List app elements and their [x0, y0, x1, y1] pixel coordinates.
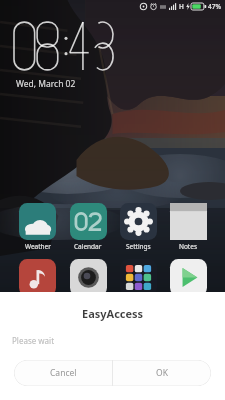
staticText: Weather	[25, 242, 51, 251]
button[interactable]: Cancel	[14, 360, 112, 386]
button[interactable]: Weather	[12, 203, 63, 251]
button[interactable]: Calendar	[63, 203, 113, 251]
staticText: Settings	[126, 242, 151, 251]
staticText: Please wait	[12, 335, 55, 346]
staticText: H	[179, 2, 184, 11]
staticText: EasyAccess	[82, 306, 144, 321]
staticText: 47%	[208, 2, 221, 11]
button[interactable]: OK	[112, 360, 211, 386]
button[interactable]: Settings	[113, 203, 163, 251]
staticText: Calendar	[74, 242, 102, 251]
button[interactable]: App	[113, 259, 163, 296]
button[interactable]: App	[12, 259, 63, 296]
staticText: OK	[156, 367, 168, 379]
button[interactable]: Notes	[163, 203, 213, 251]
button[interactable]: App	[163, 259, 213, 296]
staticText: Wed, March 02	[16, 78, 76, 90]
staticText: Notes	[179, 242, 197, 251]
staticText: Cancel	[50, 367, 77, 379]
button[interactable]: App	[63, 259, 113, 296]
